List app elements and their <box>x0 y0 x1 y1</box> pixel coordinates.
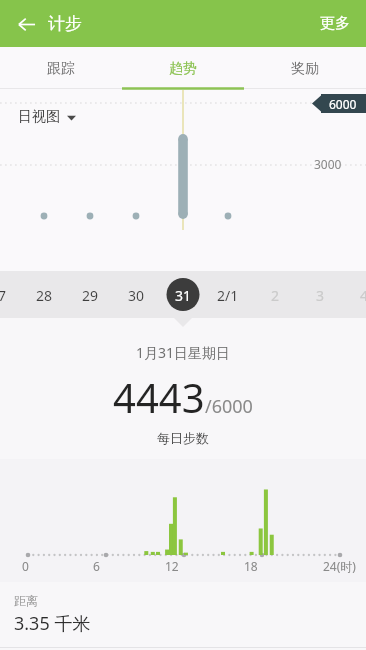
button[interactable]: 29 <box>73 278 107 312</box>
staticText: 0 <box>22 558 29 574</box>
button[interactable]: 跟踪 <box>0 47 122 90</box>
staticText: 距离 <box>14 593 38 608</box>
staticText: 日视图 <box>18 108 60 126</box>
staticText: 7 <box>0 286 7 305</box>
button[interactable]: 3 <box>303 278 337 312</box>
button[interactable]: 2/1 <box>211 278 245 312</box>
button[interactable]: 更多 <box>312 6 358 41</box>
button[interactable]: 31 <box>166 278 200 312</box>
staticText: 4 <box>360 286 366 305</box>
button[interactable]: 趋势 <box>122 47 244 90</box>
button[interactable]: 28 <box>27 278 61 312</box>
staticText: 奖励 <box>291 60 319 78</box>
button[interactable]: 奖励 <box>244 47 366 90</box>
button[interactable]: 7 <box>0 278 19 312</box>
button[interactable]: 30 <box>119 278 153 312</box>
staticText: 28 <box>36 286 53 305</box>
staticText: 12 <box>165 558 179 574</box>
staticText: /6000 <box>205 394 253 419</box>
staticText: 2/1 <box>217 286 239 305</box>
staticText: 趋势 <box>169 60 197 78</box>
staticText: 31 <box>175 286 192 305</box>
staticText: 2 <box>271 286 280 305</box>
button[interactable]: 2 <box>258 278 292 312</box>
staticText: 3000 <box>314 156 342 172</box>
button[interactable]: Back <box>6 4 46 44</box>
button[interactable]: 4 <box>347 278 366 312</box>
staticText: 更多 <box>320 14 350 33</box>
staticText: 4443 <box>113 370 205 424</box>
staticText: 6000 <box>329 96 357 112</box>
staticText: 每日步数 <box>157 430 209 446</box>
staticText: 3.35 千米 <box>14 611 91 636</box>
button[interactable]: 日视图 <box>14 104 80 130</box>
staticText: 6 <box>93 558 100 574</box>
staticText: 18 <box>244 558 258 574</box>
staticText: 29 <box>82 286 99 305</box>
button[interactable]: 距离 <box>0 582 366 647</box>
staticText: 1月31日星期日 <box>136 343 231 362</box>
staticText: 24(时) <box>323 558 356 574</box>
staticText: 30 <box>128 286 145 305</box>
staticText: 计步 <box>48 13 82 34</box>
staticText: 跟踪 <box>47 60 75 78</box>
staticText: 3 <box>316 286 325 305</box>
